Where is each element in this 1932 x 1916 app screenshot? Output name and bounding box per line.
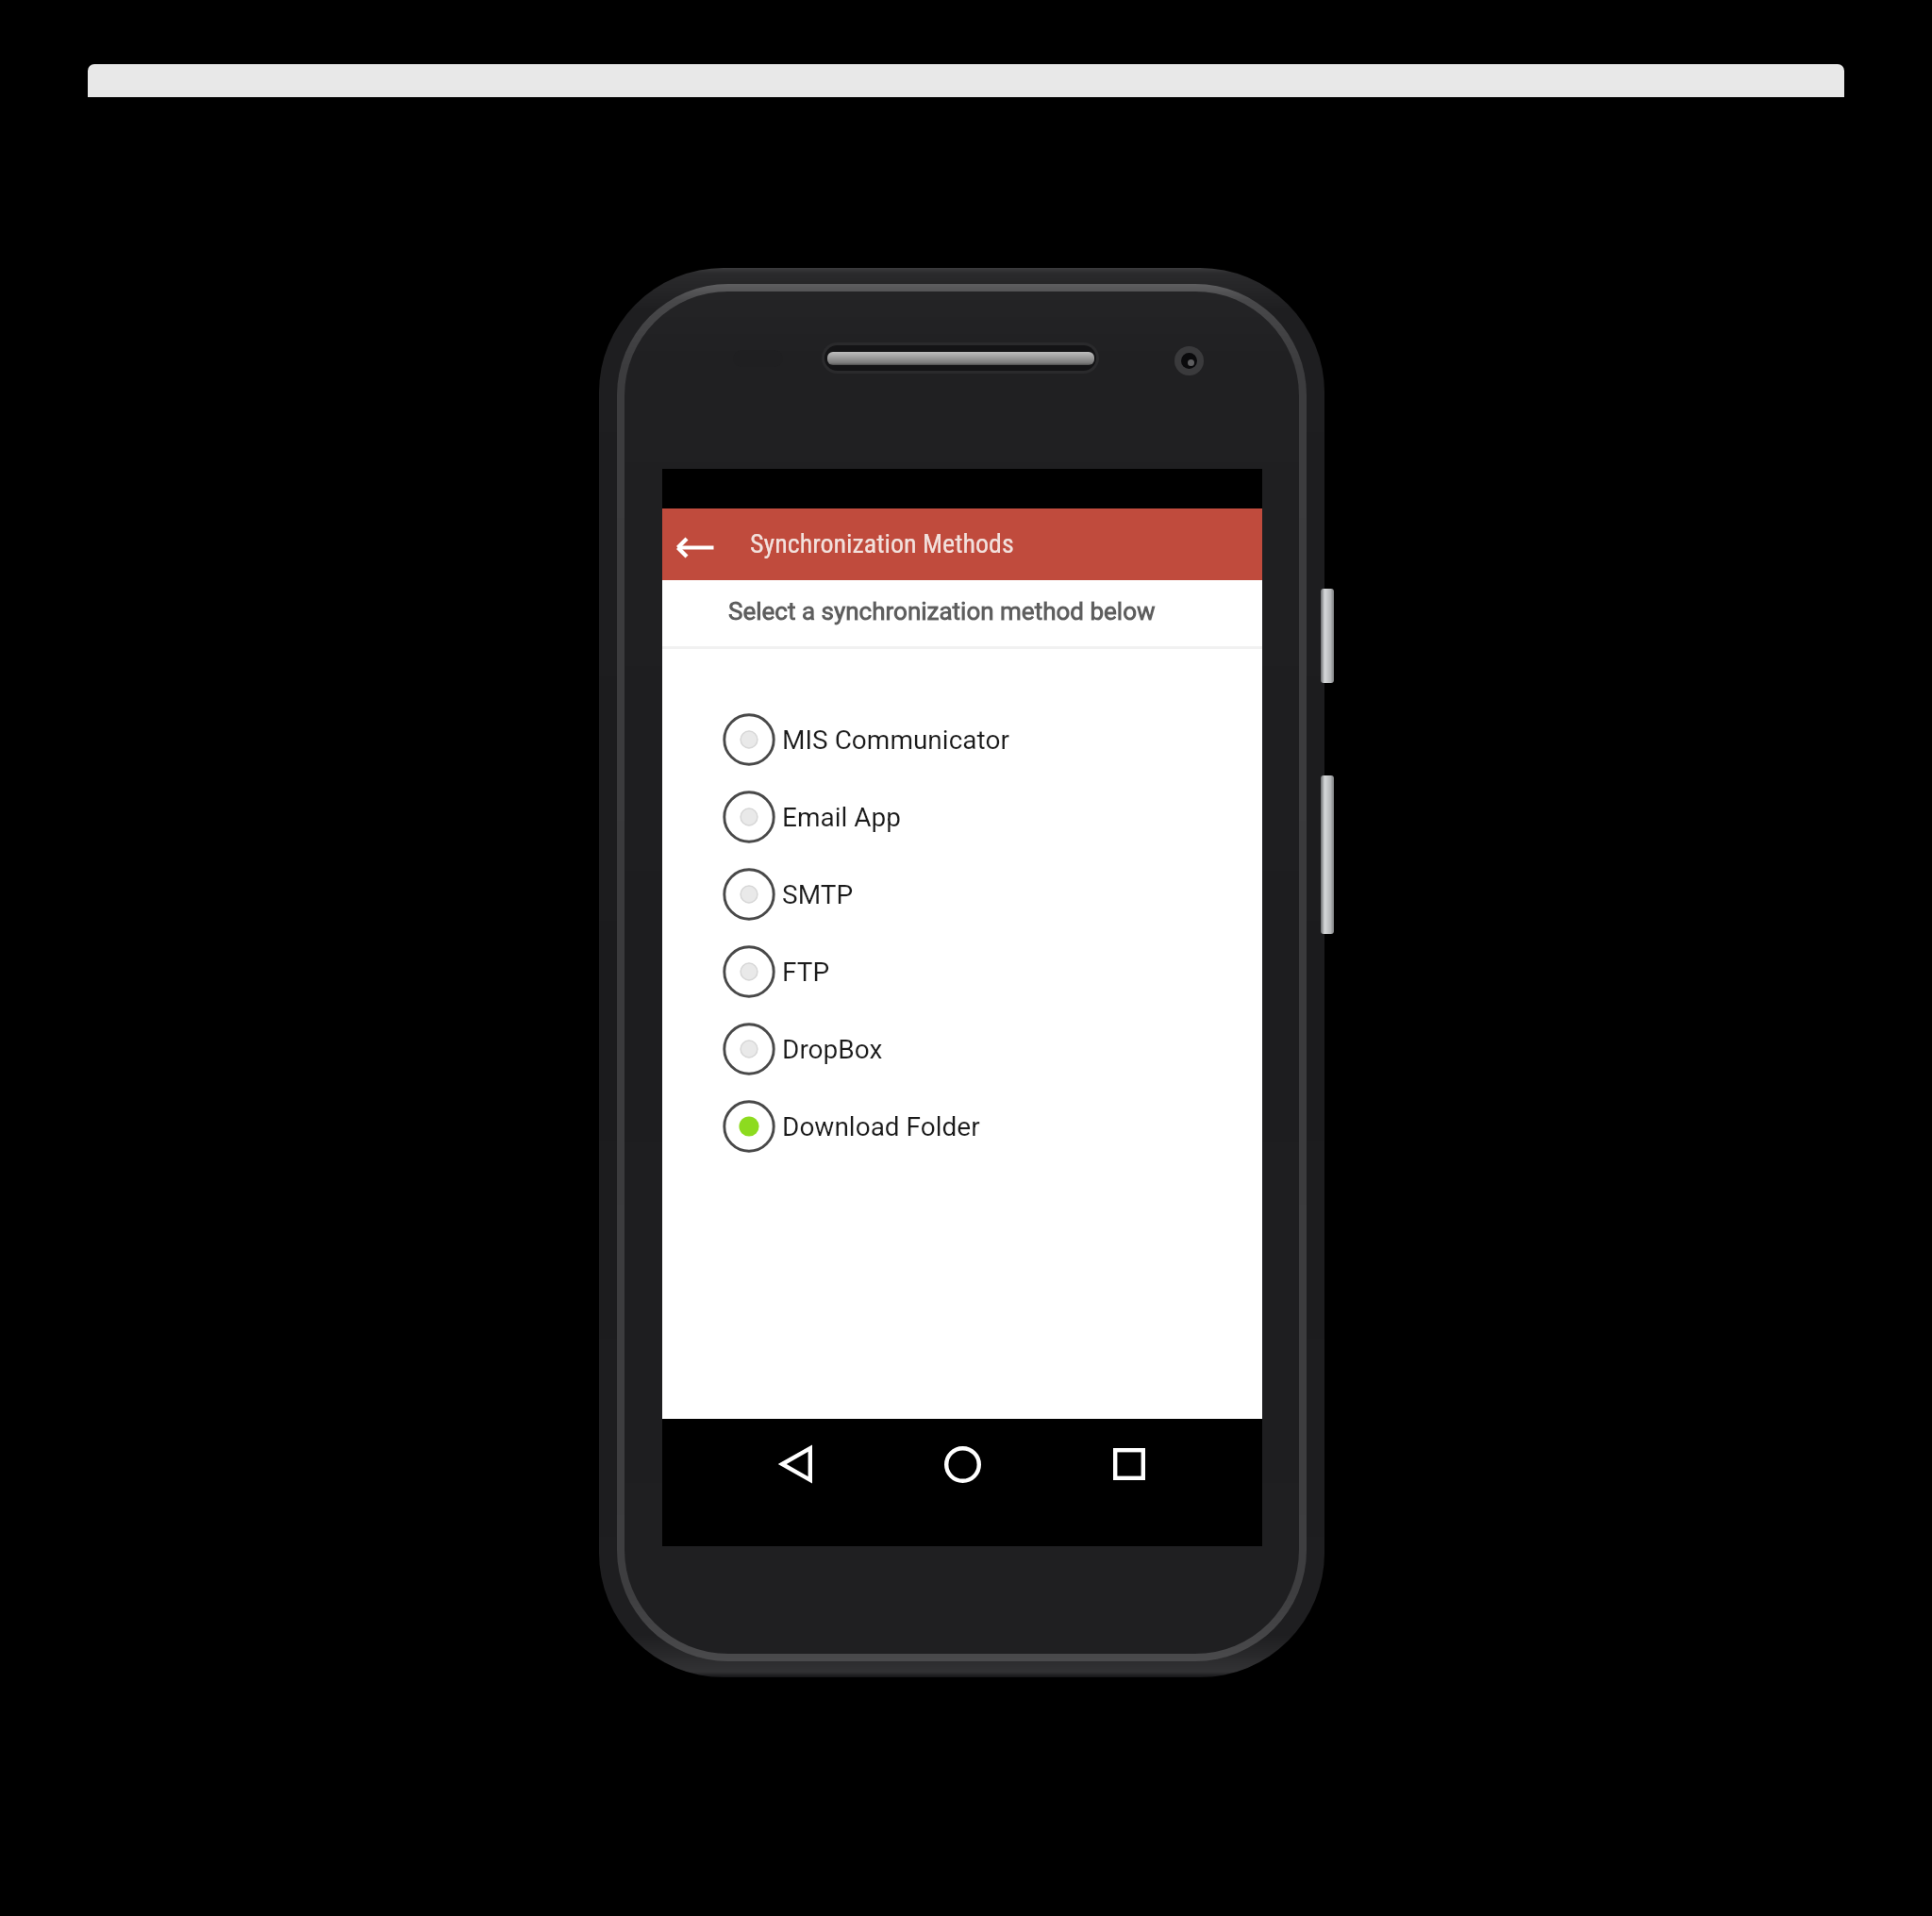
button[interactable]: FTP bbox=[662, 933, 1262, 1010]
button[interactable]: MIS Communicator bbox=[662, 701, 1262, 778]
button[interactable]: Email App bbox=[662, 778, 1262, 856]
staticText: DropBox bbox=[782, 1034, 883, 1065]
staticText: Email App bbox=[782, 802, 901, 833]
button[interactable]: Home bbox=[906, 1426, 1019, 1502]
staticText: Select a synchronization method below bbox=[728, 597, 1156, 625]
staticText: FTP bbox=[782, 957, 830, 988]
button[interactable]: DropBox bbox=[662, 1010, 1262, 1088]
button[interactable]: Back bbox=[740, 1426, 853, 1502]
button[interactable]: SMTP bbox=[662, 856, 1262, 933]
staticText: MIS Communicator bbox=[782, 725, 1009, 756]
button[interactable]: Navigate up bbox=[662, 514, 728, 580]
button[interactable]: Download Folder bbox=[662, 1088, 1262, 1165]
button[interactable]: Recent apps bbox=[1073, 1426, 1186, 1502]
staticText: Download Folder bbox=[782, 1111, 980, 1142]
staticText: Synchronization Methods bbox=[750, 528, 1014, 559]
staticText: SMTP bbox=[782, 879, 854, 910]
